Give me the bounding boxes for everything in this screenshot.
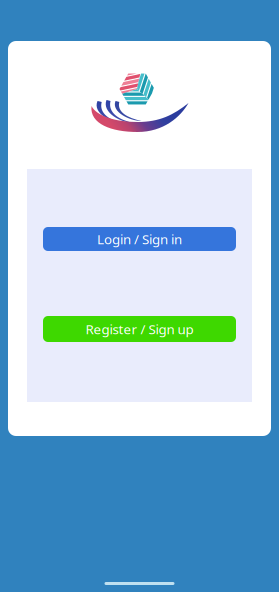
button[interactable]: Login / Sign in (43, 227, 236, 251)
staticText: Register / Sign up (85, 320, 193, 338)
button[interactable]: Register / Sign up (43, 316, 236, 342)
staticText: Login / Sign in (97, 230, 182, 248)
